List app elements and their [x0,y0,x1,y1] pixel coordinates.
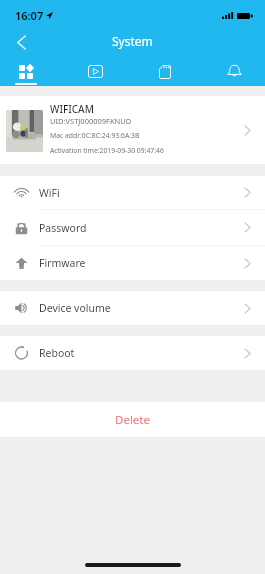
button[interactable]: Devices [2,57,50,86]
staticText: Mac addr:0C:8C:24:93:6A:3B [50,131,140,140]
staticText: Firmware [39,256,86,270]
button[interactable]: Firmware [0,246,265,280]
button[interactable]: Password [0,210,265,245]
button[interactable]: Device volume [0,291,265,325]
staticText: 16:07 [15,8,44,23]
button[interactable]: WiFi [0,176,265,209]
staticText: Device volume [39,301,111,315]
button[interactable]: Alerts [210,57,258,86]
button[interactable]: Reboot [0,336,265,370]
button[interactable]: Recordings [71,57,119,86]
staticText: WiFi [39,186,60,200]
staticText: Password [39,221,87,235]
staticText: UID:VSTJ000009FKNUD [50,116,132,126]
staticText: Delete [115,412,150,428]
button[interactable]: Back [0,25,40,57]
button[interactable]: Files [141,57,189,86]
staticText: Reboot [39,346,75,360]
button[interactable]: WIFICAM [0,96,265,164]
staticText: Activation time:2019-09-30 09:47:46 [50,146,164,155]
button[interactable]: Delete [0,402,265,437]
staticText: WIFICAM [50,102,94,116]
staticText: System [112,33,153,49]
